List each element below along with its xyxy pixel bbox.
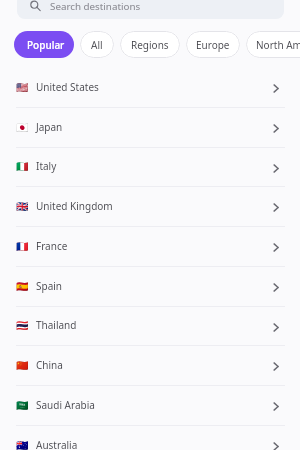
staticText: China [36,358,63,372]
other: Open [273,362,279,371]
staticText: 🇸🇦 [16,400,29,412]
staticText: Australia [36,438,78,450]
staticText: Italy [36,159,57,173]
staticText: Saudi Arabia [36,398,95,412]
button[interactable]: Popular [14,31,74,58]
button[interactable]: 🇦🇺 [0,426,300,450]
staticText: 🇫🇷 [16,241,29,253]
staticText: 🇮🇹 [16,161,29,173]
button[interactable]: 🇬🇧 [0,187,300,226]
other: Open [273,84,279,93]
staticText: 🇺🇸 [16,82,29,94]
other: Open [273,323,279,332]
staticText: Japan [36,120,63,134]
staticText: Spain [36,279,63,293]
staticText: 🇪🇸 [16,281,29,293]
staticText: All [91,38,103,52]
other: Open [273,203,279,212]
button[interactable]: North America [246,31,300,58]
other: Open [273,164,279,173]
staticText: United Kingdom [36,199,113,213]
other: Open [273,402,279,411]
button[interactable]: 🇫🇷 [0,227,300,266]
staticText: Europe [196,38,230,52]
other: Open [273,283,279,292]
button[interactable]: 🇮🇹 [0,148,300,186]
other: Search [29,1,41,13]
other: Open [273,243,279,252]
button[interactable]: 🇺🇸 [0,68,300,107]
other: Open [273,442,279,450]
button[interactable]: Regions [120,31,180,58]
staticText: Popular [27,38,65,52]
other: Open [273,124,279,133]
button[interactable]: 🇪🇸 [0,267,300,306]
staticText: 🇬🇧 [16,201,29,213]
staticText: France [36,239,68,253]
staticText: Thailand [36,318,77,332]
button[interactable]: Search [17,0,284,19]
button[interactable]: 🇹🇭 [0,307,300,345]
staticText: Regions [131,38,169,52]
staticText: 🇯🇵 [16,122,29,134]
staticText: 🇨🇳 [16,360,29,372]
staticText: Search destinations [50,0,141,13]
button[interactable]: 🇯🇵 [0,108,300,147]
button[interactable]: All [80,31,114,58]
staticText: United States [36,80,99,94]
staticText: North America [256,38,300,52]
button[interactable]: Europe [186,31,240,58]
button[interactable]: 🇨🇳 [0,346,300,385]
button[interactable]: 🇸🇦 [0,386,300,425]
staticText: 🇦🇺 [16,440,29,450]
staticText: 🇹🇭 [16,320,29,332]
